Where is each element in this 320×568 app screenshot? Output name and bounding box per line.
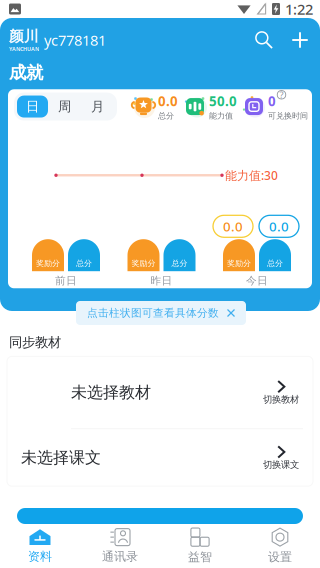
staticText: 总分 <box>267 258 283 268</box>
staticText: YANCHUAN <box>9 45 39 53</box>
staticText: 能力值:30 <box>225 167 278 183</box>
staticText: 昨日 <box>150 274 172 287</box>
staticText: 周 <box>58 98 71 115</box>
button[interactable]: Add <box>282 23 318 57</box>
staticText: 0 <box>268 92 276 110</box>
staticText: 日 <box>26 98 39 115</box>
staticText: yc778181 <box>44 30 106 50</box>
button[interactable]: 未选择课文 <box>7 429 313 486</box>
button[interactable]: 未选择教材 <box>7 356 313 428</box>
staticText: 设置 <box>268 550 292 564</box>
staticText: 0.0 <box>269 217 289 235</box>
staticText: 益智 <box>188 550 212 564</box>
staticText: 月 <box>91 98 104 115</box>
staticText: 奖励分 <box>131 258 155 268</box>
staticText: 奖励分 <box>36 258 60 268</box>
staticText: 切换课文 <box>263 459 299 470</box>
staticText: 通讯录 <box>102 549 138 564</box>
staticText: 切换教材 <box>263 394 299 405</box>
button[interactable]: Action <box>0 508 320 524</box>
staticText: 0.0 <box>158 92 178 110</box>
staticText: 奖励分 <box>227 258 251 268</box>
button[interactable]: 设置 <box>240 524 320 568</box>
staticText: 可兑换时间 <box>268 111 308 121</box>
staticText: 0.0 <box>223 217 243 235</box>
staticText: 总分 <box>158 111 174 121</box>
staticText: 未选择教材 <box>71 383 151 402</box>
staticText: 点击柱状图可查看具体分数 <box>87 306 219 319</box>
button[interactable]: 通讯录 <box>80 524 160 568</box>
button[interactable]: Close tip <box>227 309 235 317</box>
staticText: 资料 <box>28 549 52 564</box>
staticText: 总分 <box>76 258 92 268</box>
staticText: 总分 <box>171 258 187 268</box>
button[interactable]: 益智 <box>160 524 240 568</box>
staticText: 50.0 <box>209 92 237 110</box>
staticText: 1:22 <box>285 0 313 19</box>
staticText: 成就 <box>9 62 43 83</box>
staticText: ? <box>279 89 283 101</box>
button[interactable]: 资料 <box>0 524 80 568</box>
staticText: 颜川 <box>9 27 39 45</box>
staticText: 同步教材 <box>9 334 61 350</box>
button[interactable]: Search <box>246 23 282 57</box>
staticText: 今日 <box>246 274 268 287</box>
staticText: 能力值 <box>209 111 233 121</box>
staticText: 未选择课文 <box>21 448 101 468</box>
staticText: 前日 <box>55 274 77 287</box>
